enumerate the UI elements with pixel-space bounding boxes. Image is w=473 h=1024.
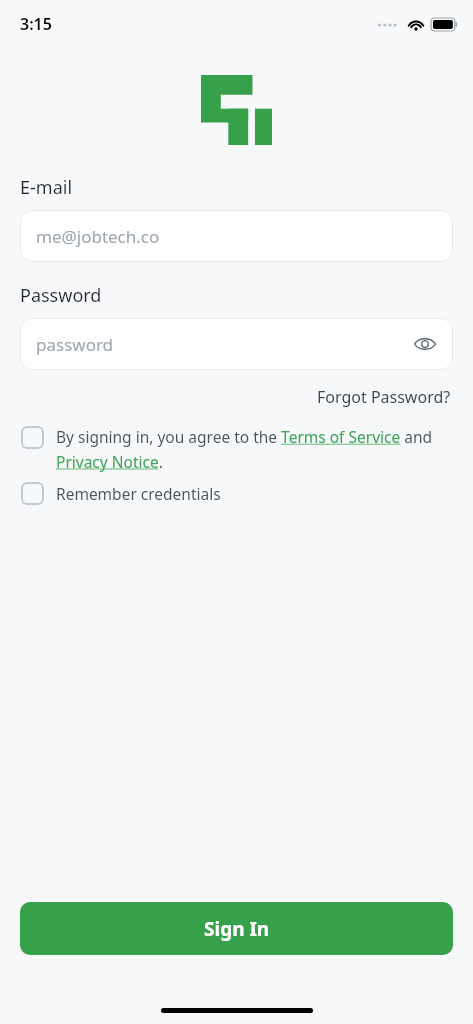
button[interactable]: Checkbox bbox=[20, 426, 453, 472]
staticText: E-mail bbox=[20, 175, 73, 200]
button[interactable]: Checkbox bbox=[21, 426, 44, 449]
staticText: password bbox=[36, 333, 114, 356]
staticText: Password bbox=[20, 283, 102, 308]
staticText: Remember credentials bbox=[56, 483, 221, 504]
button[interactable]: Checkbox bbox=[21, 482, 44, 505]
staticText: Sign In bbox=[204, 916, 270, 942]
button[interactable]: password bbox=[20, 318, 453, 370]
button[interactable]: me@jobtech.co bbox=[20, 210, 453, 262]
button[interactable]: Sign In bbox=[20, 902, 453, 955]
staticText: me@jobtech.co bbox=[36, 225, 160, 248]
button[interactable]: Show password bbox=[409, 328, 441, 360]
staticText: By signing in, you agree to the Terms of… bbox=[56, 426, 453, 472]
button[interactable]: Checkbox bbox=[20, 482, 453, 505]
staticText: 3:15 bbox=[20, 13, 52, 35]
button[interactable]: Forgot Password? bbox=[315, 384, 453, 410]
